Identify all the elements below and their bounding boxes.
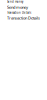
staticText: Send money (7, 0, 23, 3)
staticText: Transaction Details (7, 11, 31, 14)
staticText: Send money (7, 4, 28, 10)
staticText: Transaction Details (7, 15, 40, 21)
